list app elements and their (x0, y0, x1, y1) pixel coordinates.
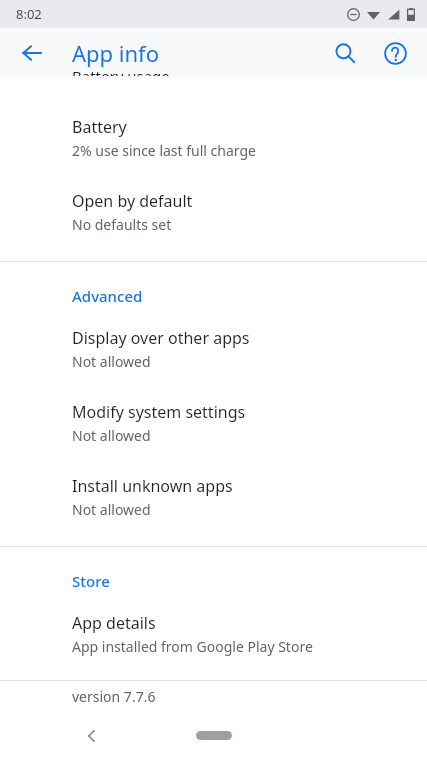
staticText: Modify system settings (72, 401, 246, 423)
button[interactable]: Open by default (0, 190, 427, 234)
staticText: Install unknown apps (72, 475, 233, 497)
button[interactable]: Back (10, 31, 54, 75)
button[interactable]: Modify system settings (0, 401, 427, 445)
staticText: App details (72, 612, 156, 634)
staticText: version 7.7.6 (72, 687, 156, 706)
staticText: No defaults set (72, 215, 172, 234)
staticText: Not allowed (72, 352, 151, 371)
button[interactable]: Display over other apps (0, 327, 427, 371)
staticText: Battery (72, 116, 127, 138)
button[interactable]: Home (196, 731, 232, 740)
button[interactable]: Install unknown apps (0, 475, 427, 519)
staticText: Open by default (72, 190, 193, 212)
button[interactable]: Help (373, 31, 417, 75)
button[interactable]: Battery (0, 116, 427, 160)
staticText: Not allowed (72, 500, 151, 519)
staticText: Battery usage (72, 66, 170, 76)
staticText: Advanced (72, 286, 143, 306)
staticText: App installed from Google Play Store (72, 637, 313, 656)
staticText: Store (72, 571, 110, 591)
button[interactable]: Back (70, 714, 114, 758)
staticText: 8:02 (16, 5, 42, 23)
staticText: Display over other apps (72, 327, 250, 349)
staticText: Not allowed (72, 426, 151, 445)
staticText: 2% use since last full charge (72, 141, 256, 160)
button[interactable]: App details (0, 612, 427, 656)
button[interactable]: Search (323, 31, 367, 75)
staticText: App info (72, 38, 159, 68)
